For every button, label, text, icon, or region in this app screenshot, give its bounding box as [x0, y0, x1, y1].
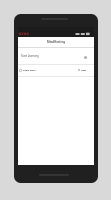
staticText: Show Base: [23, 68, 36, 71]
staticText: Start Learning: [21, 54, 39, 58]
button[interactable]: Show Base: [18, 64, 94, 76]
staticText: Next: [81, 69, 87, 72]
button[interactable]: Start Learning: [18, 47, 94, 64]
staticText: MindHosting: [47, 40, 65, 44]
other: More options: [84, 56, 87, 59]
